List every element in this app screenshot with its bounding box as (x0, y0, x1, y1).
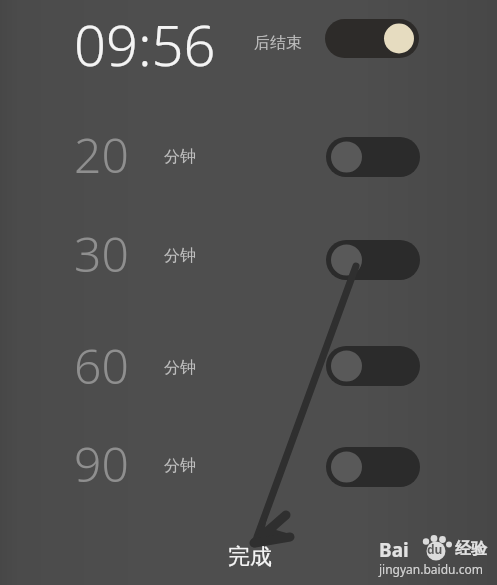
staticText: 分钟 (164, 456, 196, 476)
button[interactable]: 60 minutes toggle (326, 346, 420, 386)
staticText: 经验 (455, 539, 487, 559)
button[interactable]: 完成 (218, 540, 282, 574)
staticText: 90 (74, 431, 129, 496)
staticText: 分钟 (164, 246, 196, 266)
staticText: jingyan.baidu.com (379, 561, 483, 577)
staticText: 30 (74, 221, 129, 286)
staticText: Bai (379, 537, 409, 563)
staticText: 20 (74, 122, 129, 187)
staticText: 60 (74, 333, 129, 398)
staticText: du (427, 541, 443, 557)
button[interactable]: 20 minutes toggle (326, 137, 420, 177)
staticText: 分钟 (164, 358, 196, 378)
button[interactable]: 30 minutes toggle (326, 240, 420, 280)
staticText: 后结束 (254, 33, 302, 53)
staticText: 09:56 (74, 6, 216, 82)
staticText: 完成 (228, 543, 272, 571)
staticText: 分钟 (164, 147, 196, 167)
button[interactable]: 90 minutes toggle (326, 447, 420, 487)
button[interactable]: End after toggle (325, 19, 419, 58)
